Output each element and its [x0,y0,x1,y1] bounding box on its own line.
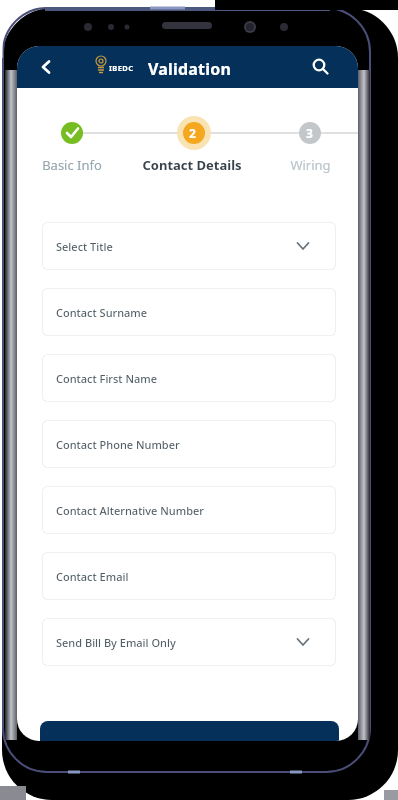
button[interactable]: Contact Email [42,552,336,600]
staticText: Contact First Name [56,371,157,386]
staticText: Contact Alternative Number [56,503,204,518]
button[interactable]: Contact Phone Number [42,420,336,468]
staticText: 3 [306,125,313,141]
staticText: Contact Details [142,156,242,174]
staticText: Contact Email [56,569,129,584]
staticText: Validation [148,58,232,80]
staticText: IBEDC [109,63,134,73]
button[interactable]: Select Title [42,222,336,270]
button[interactable]: Send Bill By Email Only [42,618,336,666]
staticText: Send Bill By Email Only [56,635,176,650]
staticText: Wiring [290,156,331,174]
staticText: Contact Surname [56,305,148,320]
staticText: 2 [189,125,196,141]
button[interactable]: Contact Surname [42,288,336,336]
button[interactable] [304,49,338,85]
button[interactable] [40,721,339,741]
staticText: Select Title [56,239,113,254]
button[interactable]: Contact First Name [42,354,336,402]
button[interactable] [30,51,62,83]
staticText: Contact Phone Number [56,437,180,452]
button[interactable]: Contact Alternative Number [42,486,336,534]
staticText: Basic Info [42,156,102,174]
